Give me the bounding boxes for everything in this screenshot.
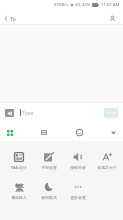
staticText: 97KB/s (54, 2, 68, 8)
button[interactable]: 候选字大小 (92, 141, 121, 171)
staticText: 4G (75, 2, 81, 8)
staticText: 11:07 AM (101, 2, 120, 8)
button[interactable]: Account (107, 13, 118, 24)
button[interactable]: 繁 (4, 171, 34, 201)
staticText: 45% (82, 2, 91, 8)
staticText: To (10, 15, 16, 22)
button[interactable]: 按键音效 (63, 141, 92, 171)
button[interactable]: Emoji (73, 124, 85, 141)
button[interactable]: Send (104, 108, 118, 118)
button[interactable]: 更多设置 (63, 171, 92, 201)
button[interactable]: Switch keyboard (5, 109, 14, 117)
staticText: 手写设置 (41, 165, 57, 170)
button[interactable]: Collapse keyboard (107, 124, 119, 141)
staticText: 候选字大小 (97, 165, 117, 170)
staticText: 更多设置 (70, 195, 86, 200)
button[interactable]: Image (38, 124, 50, 141)
staticText: 繁体输入 (11, 195, 27, 200)
staticText: Type (22, 109, 34, 116)
staticText: 按键音效 (70, 165, 86, 170)
button[interactable]: Keyboard (4, 124, 16, 141)
staticText: 键盘设计 (11, 165, 27, 170)
staticText: Send (106, 110, 116, 116)
button[interactable]: 手写设置 (34, 141, 63, 171)
staticText: 繁 (15, 182, 24, 192)
button[interactable]: 键盘设计 (4, 141, 34, 171)
button[interactable]: To (0, 13, 21, 24)
button[interactable]: 夜间模式 (34, 171, 63, 201)
staticText: 夜间模式 (41, 195, 57, 200)
button[interactable]: Type (17, 107, 101, 118)
